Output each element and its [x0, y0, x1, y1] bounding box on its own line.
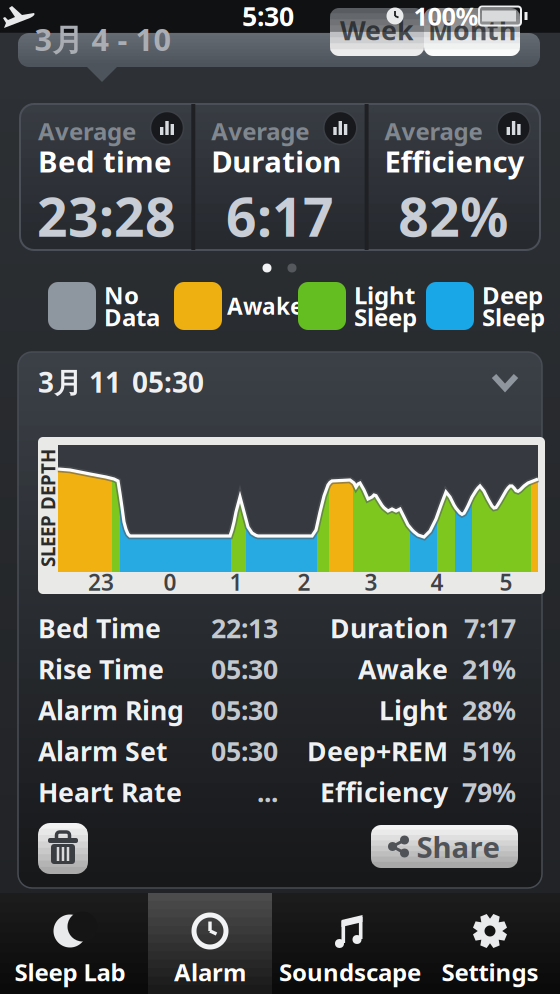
staticText: Average	[38, 115, 136, 147]
staticText: ...	[257, 774, 278, 810]
staticText: 5	[499, 567, 512, 597]
button[interactable]: Month	[424, 8, 520, 56]
button[interactable]: Bed time statistics	[150, 111, 183, 144]
staticText: 3月 4 - 10	[34, 19, 171, 59]
staticText: Heart Rate	[38, 774, 182, 810]
staticText: 22:13	[211, 610, 278, 646]
staticText: 5:30	[242, 0, 294, 34]
staticText: 3月 11	[38, 363, 121, 401]
staticText: Average	[385, 115, 483, 147]
staticText: Efficiency	[320, 774, 448, 810]
staticText: 05:30	[211, 692, 278, 728]
staticText: 6:17	[226, 181, 334, 251]
staticText: Average	[211, 115, 309, 147]
staticText: Month	[428, 12, 516, 48]
staticText: 21%	[462, 651, 516, 687]
staticText: 4	[430, 567, 443, 597]
staticText: 05:30	[132, 363, 204, 401]
staticText: Sleep	[482, 301, 545, 333]
staticText: Duration	[211, 141, 341, 180]
staticText: 23	[88, 567, 114, 597]
staticText: Deep	[482, 279, 543, 311]
button[interactable]: Share	[371, 825, 518, 868]
staticText: Duration	[330, 610, 448, 646]
button[interactable]: Duration statistics	[324, 111, 357, 144]
staticText: 23:28	[37, 181, 176, 251]
staticText: Soundscape	[279, 956, 421, 988]
staticText: 2	[297, 567, 310, 597]
staticText: Awake	[358, 651, 448, 687]
staticText: Bed Time	[38, 610, 161, 646]
staticText: Share	[416, 827, 500, 866]
staticText: 100%	[413, 0, 478, 33]
staticText: Data	[104, 301, 160, 333]
staticText: 0	[163, 567, 176, 597]
staticText: Week	[340, 12, 414, 48]
staticText: 51%	[462, 733, 516, 769]
staticText: 82%	[398, 181, 508, 251]
staticText: SLEEP DEPTH	[0, 496, 107, 520]
staticText: 79%	[462, 774, 516, 810]
button[interactable]: Efficiency statistics	[497, 111, 530, 144]
staticText: Bed time	[38, 141, 172, 180]
staticText: 05:30	[211, 651, 278, 687]
staticText: Light	[379, 692, 448, 728]
staticText: 3	[364, 567, 377, 597]
staticText: Deep+REM	[307, 733, 448, 769]
button[interactable]: Settings	[428, 893, 552, 994]
button[interactable]: Delete	[38, 823, 88, 874]
button[interactable]: Soundscape	[288, 893, 412, 994]
staticText: 1	[229, 567, 242, 597]
staticText: Efficiency	[385, 141, 525, 180]
staticText: 05:30	[211, 733, 278, 769]
staticText: Settings	[441, 956, 538, 988]
staticText: Alarm Set	[38, 733, 168, 769]
staticText: Awake	[227, 291, 304, 321]
staticText: Sleep	[354, 301, 417, 333]
button[interactable]: Alarm	[148, 893, 272, 994]
staticText: 28%	[462, 692, 516, 728]
staticText: No	[104, 279, 139, 311]
staticText: Sleep Lab	[14, 956, 125, 988]
button[interactable]: Sleep Lab	[8, 893, 132, 994]
button[interactable]: Collapse day 3月 11	[18, 352, 542, 410]
staticText: Rise Time	[38, 651, 164, 687]
button[interactable]: Week	[330, 8, 424, 56]
staticText: Alarm	[174, 956, 246, 988]
staticText: Alarm Ring	[38, 692, 184, 728]
staticText: 7:17	[464, 610, 516, 646]
staticText: Light	[354, 279, 415, 311]
